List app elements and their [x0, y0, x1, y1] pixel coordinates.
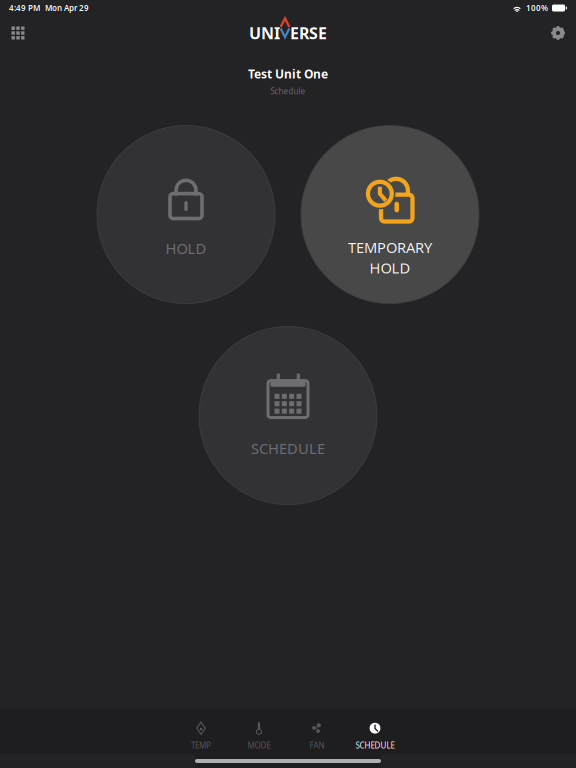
button[interactable]: All units	[2, 19, 34, 47]
button[interactable]: MODE	[230, 709, 288, 754]
button[interactable]: HOLD	[97, 126, 275, 304]
button[interactable]: SCHEDULE	[199, 327, 377, 505]
button[interactable]: SCHEDULE	[346, 709, 404, 754]
staticText: TEMP	[191, 740, 211, 751]
staticText: 100%	[526, 3, 548, 13]
staticText: Test Unit One	[248, 66, 328, 82]
staticText: UNI	[249, 22, 280, 44]
staticText: 4:49 PM	[9, 3, 40, 13]
staticText: ERSE	[290, 22, 327, 44]
button[interactable]: TEMPORARY	[301, 126, 479, 304]
staticText: FAN	[309, 740, 324, 751]
staticText: SCHEDULE	[355, 740, 394, 751]
button[interactable]: TEMP	[172, 709, 230, 754]
staticText: HOLD	[165, 239, 206, 258]
button[interactable]: Settings	[542, 19, 574, 47]
staticText: HOLD	[369, 258, 410, 277]
staticText: TEMPORARY	[348, 238, 432, 257]
staticText: MODE	[247, 740, 270, 751]
staticText: SCHEDULE	[251, 439, 325, 458]
button[interactable]: FAN	[288, 709, 346, 754]
staticText: Mon Apr 29	[45, 3, 89, 13]
staticText: Schedule	[270, 86, 305, 96]
